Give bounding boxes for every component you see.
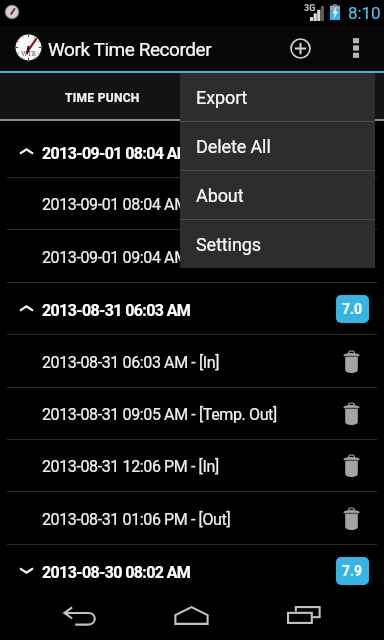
staticText: 2013-08-30 08:02 AM: [42, 563, 191, 582]
button[interactable]: Delete: [331, 336, 371, 387]
button[interactable]: Delete: [331, 231, 371, 282]
staticText: 7.0: [342, 301, 363, 317]
button[interactable]: Delete: [331, 493, 371, 544]
button[interactable]: Settings: [180, 220, 375, 268]
staticText: Export: [196, 87, 248, 108]
button[interactable]: Add: [277, 25, 323, 71]
staticText: 2013-08-31 01:06 PM - [Out]: [42, 510, 231, 529]
staticText: 2013-08-31 06:03 AM - [In]: [42, 353, 220, 372]
staticText: Settings: [196, 234, 261, 255]
staticText: 3G: [304, 3, 316, 14]
staticText: Work Time Recorder: [48, 38, 212, 60]
button[interactable]: 2013-09-01 08:04 AM - [In]: [0, 178, 384, 229]
staticText: 2013-08-31 06:03 AM: [42, 301, 191, 320]
button[interactable]: Recent apps: [287, 590, 327, 640]
button[interactable]: 2013-09-01 08:04 AM: [0, 126, 384, 177]
button[interactable]: Delete All: [180, 122, 375, 170]
staticText: About: [196, 185, 244, 206]
button[interactable]: More options: [339, 25, 373, 71]
staticText: 8:10: [348, 3, 381, 23]
button[interactable]: 2013-08-31 09:05 AM - [Temp. Out]: [0, 388, 384, 439]
button[interactable]: Home: [174, 590, 214, 640]
button[interactable]: 2013-08-31 01:06 PM - [Out]: [0, 493, 384, 544]
staticText: 2013-08-31 12:06 PM - [In]: [42, 457, 219, 476]
button[interactable]: About: [180, 171, 375, 219]
button[interactable]: Back: [62, 590, 102, 640]
button[interactable]: Export: [180, 73, 375, 121]
staticText: 7.9: [342, 563, 363, 579]
button[interactable]: 2013-08-30 08:02 AM: [0, 545, 384, 596]
button[interactable]: Delete: [331, 440, 371, 491]
staticText: Delete All: [196, 136, 271, 157]
staticText: 2013-09-01 09:04 AM - [Out]: [42, 248, 231, 267]
staticText: 2013-09-01 08:04 AM: [42, 144, 191, 163]
staticText: 2013-08-31 09:05 AM - [Temp. Out]: [42, 405, 277, 424]
staticText: TIME PUNCH: [65, 91, 140, 105]
button[interactable]: 2013-08-31 06:03 AM - [In]: [0, 336, 384, 387]
button[interactable]: 2013-08-31 06:03 AM: [0, 283, 384, 334]
button[interactable]: 2013-08-31 12:06 PM - [In]: [0, 440, 384, 491]
staticText: WTR: [21, 49, 37, 58]
staticText: 2013-09-01 08:04 AM - [In]: [42, 195, 220, 214]
button[interactable]: 2013-09-01 09:04 AM - [Out]: [0, 231, 384, 282]
button[interactable]: TIME PUNCH: [0, 73, 204, 121]
button[interactable]: Delete: [331, 178, 371, 229]
button[interactable]: Delete: [331, 388, 371, 439]
